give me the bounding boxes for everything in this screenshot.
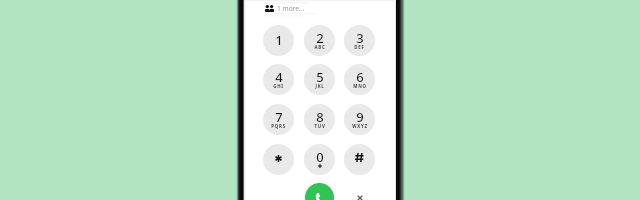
button[interactable]: 1 [263, 25, 294, 56]
staticText: JKL [315, 83, 325, 89]
button[interactable]: 7 [263, 104, 294, 135]
staticText: 1 [275, 31, 283, 49]
staticText: 6 [356, 68, 364, 86]
button[interactable]: 1 more... [265, 3, 305, 13]
staticText: TUV [314, 123, 326, 129]
button[interactable] [344, 144, 375, 175]
staticText: GHI [273, 83, 284, 89]
button[interactable]: 5 [304, 64, 335, 95]
button[interactable]: 9 [344, 104, 375, 135]
staticText: MNO [353, 83, 367, 89]
staticText: 5 [316, 68, 324, 86]
button[interactable] [263, 144, 294, 175]
button[interactable]: 0 [304, 144, 335, 175]
staticText: 1 more... [277, 4, 305, 13]
staticText: DEF [354, 44, 365, 50]
staticText: 3 [356, 29, 364, 47]
staticText: 0 [316, 148, 324, 166]
button[interactable]: 3 [344, 25, 375, 56]
button[interactable]: Call [305, 183, 334, 200]
staticText: 2 [316, 29, 324, 47]
button[interactable]: 2 [304, 25, 335, 56]
staticText: WXYZ [352, 123, 368, 129]
button[interactable]: Backspace [352, 190, 368, 200]
staticText: 4 [275, 68, 283, 86]
staticText: 8 [316, 108, 324, 126]
staticText: ABC [314, 44, 326, 50]
staticText: 9 [356, 108, 364, 126]
button[interactable]: 6 [344, 64, 375, 95]
staticText: 7 [275, 108, 283, 126]
button[interactable]: 4 [263, 64, 294, 95]
staticText: PQRS [271, 123, 286, 129]
button[interactable]: 8 [304, 104, 335, 135]
